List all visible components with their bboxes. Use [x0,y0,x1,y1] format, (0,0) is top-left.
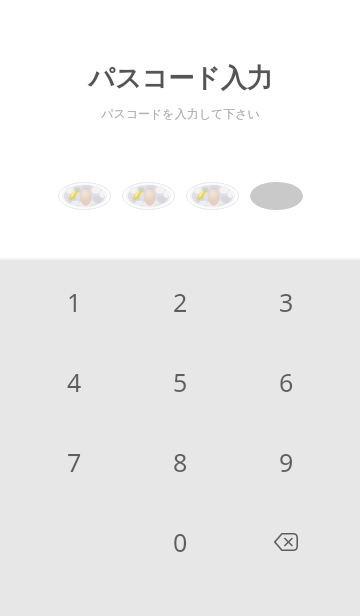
staticText: 1 [67,285,82,319]
staticText: パスコードを入力して下さい [101,106,260,121]
staticText: 4 [67,365,82,399]
button[interactable]: 3 [233,262,339,342]
staticText: パスコード入力 [88,62,273,95]
staticText: 0 [173,525,188,559]
button[interactable]: 8 [127,422,233,502]
staticText: 2 [173,285,188,319]
staticText: 6 [279,365,294,399]
button[interactable]: 1 [21,262,127,342]
button[interactable]: Backspace [233,502,339,582]
button[interactable]: 9 [233,422,339,502]
button[interactable]: 5 [127,342,233,422]
staticText: 9 [279,445,294,479]
button[interactable]: 7 [21,422,127,502]
staticText: 3 [279,285,294,319]
button[interactable]: 2 [127,262,233,342]
button[interactable]: 4 [21,342,127,422]
staticText: 5 [173,365,188,399]
staticText: 7 [67,445,82,479]
staticText: 8 [173,445,188,479]
button[interactable]: 0 [127,502,233,582]
button[interactable]: 6 [233,342,339,422]
